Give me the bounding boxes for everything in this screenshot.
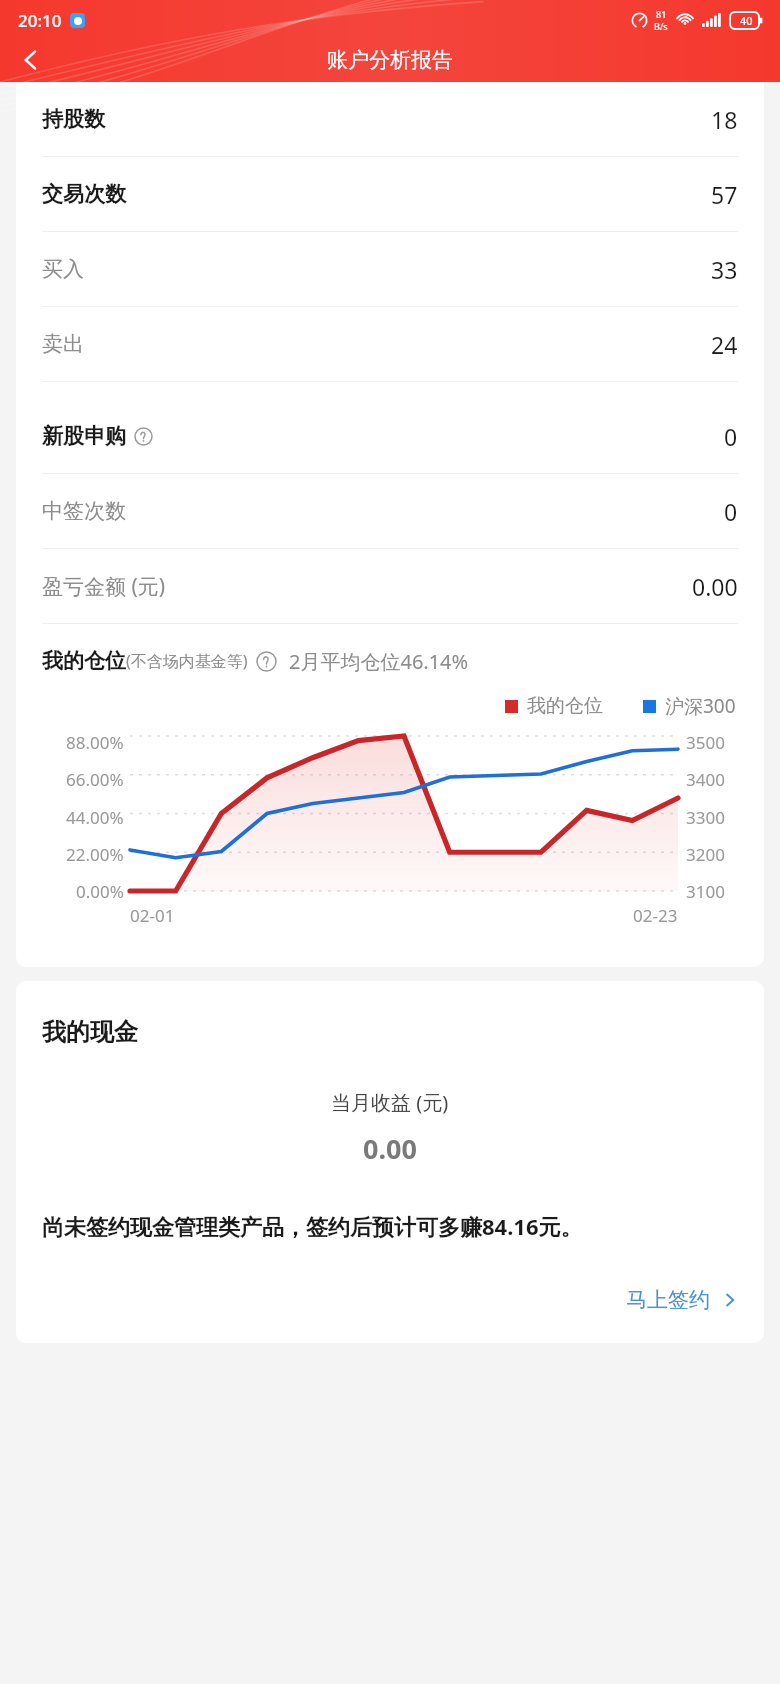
staticText: 持股数 <box>42 106 105 132</box>
staticText: 33 <box>711 254 738 285</box>
staticText: (不含场内基金等) <box>126 650 248 672</box>
staticText: 02-01 <box>130 904 175 927</box>
staticText: 57 <box>711 179 738 210</box>
staticText: 我的仓位 <box>42 648 126 674</box>
staticText: 81 <box>656 8 667 20</box>
button[interactable]: 盈亏金额 (元) <box>28 549 752 623</box>
staticText: 44.00% <box>66 806 124 829</box>
button[interactable]: 交易次数 <box>28 157 752 231</box>
staticText: 盈亏金额 (元) <box>42 572 166 601</box>
staticText: 卖出 <box>42 331 84 357</box>
staticText: 账户分析报告 <box>327 47 453 73</box>
staticText: 我的现金 <box>42 1017 138 1047</box>
staticText: 0.00% <box>76 880 124 903</box>
staticText: 0.00 <box>363 1130 417 1167</box>
staticText: 3200 <box>686 843 725 866</box>
staticText: 24 <box>711 329 738 360</box>
staticText: 20:10 <box>18 9 62 32</box>
button[interactable]: 返回 <box>0 36 62 84</box>
staticText: 3500 <box>686 731 725 754</box>
staticText: 交易次数 <box>42 181 126 207</box>
button[interactable]: 中签次数 <box>28 474 752 548</box>
button[interactable]: 卖出 <box>28 307 752 381</box>
staticText: 88.00% <box>66 731 124 754</box>
staticText: 2月平均仓位46.14% <box>289 648 469 675</box>
staticText: 3300 <box>686 806 725 829</box>
staticText: 22.00% <box>66 843 124 866</box>
staticText: 3100 <box>686 880 725 903</box>
staticText: 02-23 <box>633 904 678 927</box>
button[interactable]: 买入 <box>28 232 752 306</box>
staticText: 沪深300 <box>665 693 736 719</box>
button[interactable]: 马上签约 <box>42 1287 738 1313</box>
staticText: 18 <box>711 104 738 135</box>
staticText: 3400 <box>686 768 725 791</box>
staticText: 0 <box>724 421 738 452</box>
staticText: 当月收益 (元) <box>331 1089 449 1116</box>
staticText: 66.00% <box>66 768 124 791</box>
staticText: 0.00 <box>692 571 738 602</box>
staticText: 中签次数 <box>42 498 126 524</box>
staticText: B/s <box>654 20 668 32</box>
staticText: 0 <box>724 496 738 527</box>
staticText: 新股申购 <box>42 423 126 449</box>
staticText: 买入 <box>42 256 84 282</box>
staticText: 我的仓位 <box>527 694 603 718</box>
staticText: 马上签约 <box>626 1287 710 1313</box>
staticText: 40 <box>740 13 753 28</box>
staticText: 尚未签约现金管理类产品，签约后预计可多赚84.16元。 <box>42 1211 583 1241</box>
button[interactable]: 持股数 <box>28 82 752 156</box>
button[interactable]: 新股申购 <box>28 399 752 473</box>
